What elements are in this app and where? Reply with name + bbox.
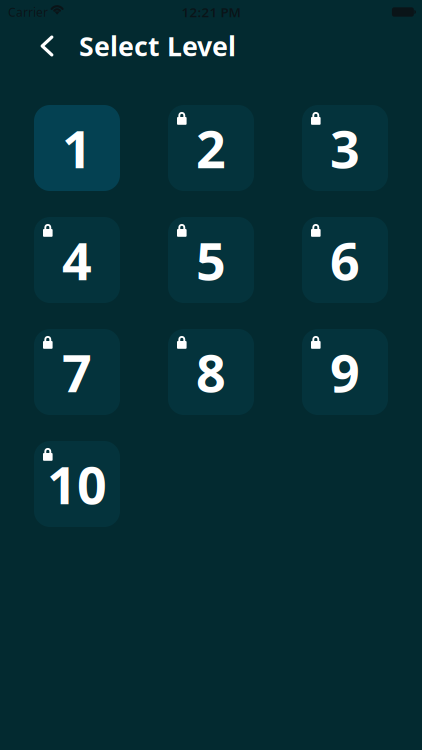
staticText: 10 xyxy=(47,449,107,519)
staticText: 5 xyxy=(196,225,226,295)
button[interactable]: 2 xyxy=(168,105,254,191)
staticText: Carrier xyxy=(8,4,48,20)
button[interactable]: 6 xyxy=(302,217,388,303)
button[interactable]: 7 xyxy=(34,329,120,415)
staticText: 3 xyxy=(330,113,360,183)
button[interactable]: 1 xyxy=(34,105,120,191)
button[interactable]: 10 xyxy=(34,441,120,527)
staticText: 12:21 PM xyxy=(181,3,240,21)
staticText: 6 xyxy=(330,225,360,295)
staticText: 2 xyxy=(196,113,226,183)
staticText: 7 xyxy=(62,337,92,407)
button[interactable]: 5 xyxy=(168,217,254,303)
staticText: 9 xyxy=(330,337,360,407)
button[interactable]: 4 xyxy=(34,217,120,303)
staticText: 4 xyxy=(62,225,92,295)
staticText: 8 xyxy=(196,337,226,407)
button[interactable]: 9 xyxy=(302,329,388,415)
staticText: Select Level xyxy=(79,28,236,64)
button[interactable]: 8 xyxy=(168,329,254,415)
staticText: 1 xyxy=(62,113,92,183)
button[interactable]: 3 xyxy=(302,105,388,191)
button[interactable]: Back xyxy=(33,24,61,68)
